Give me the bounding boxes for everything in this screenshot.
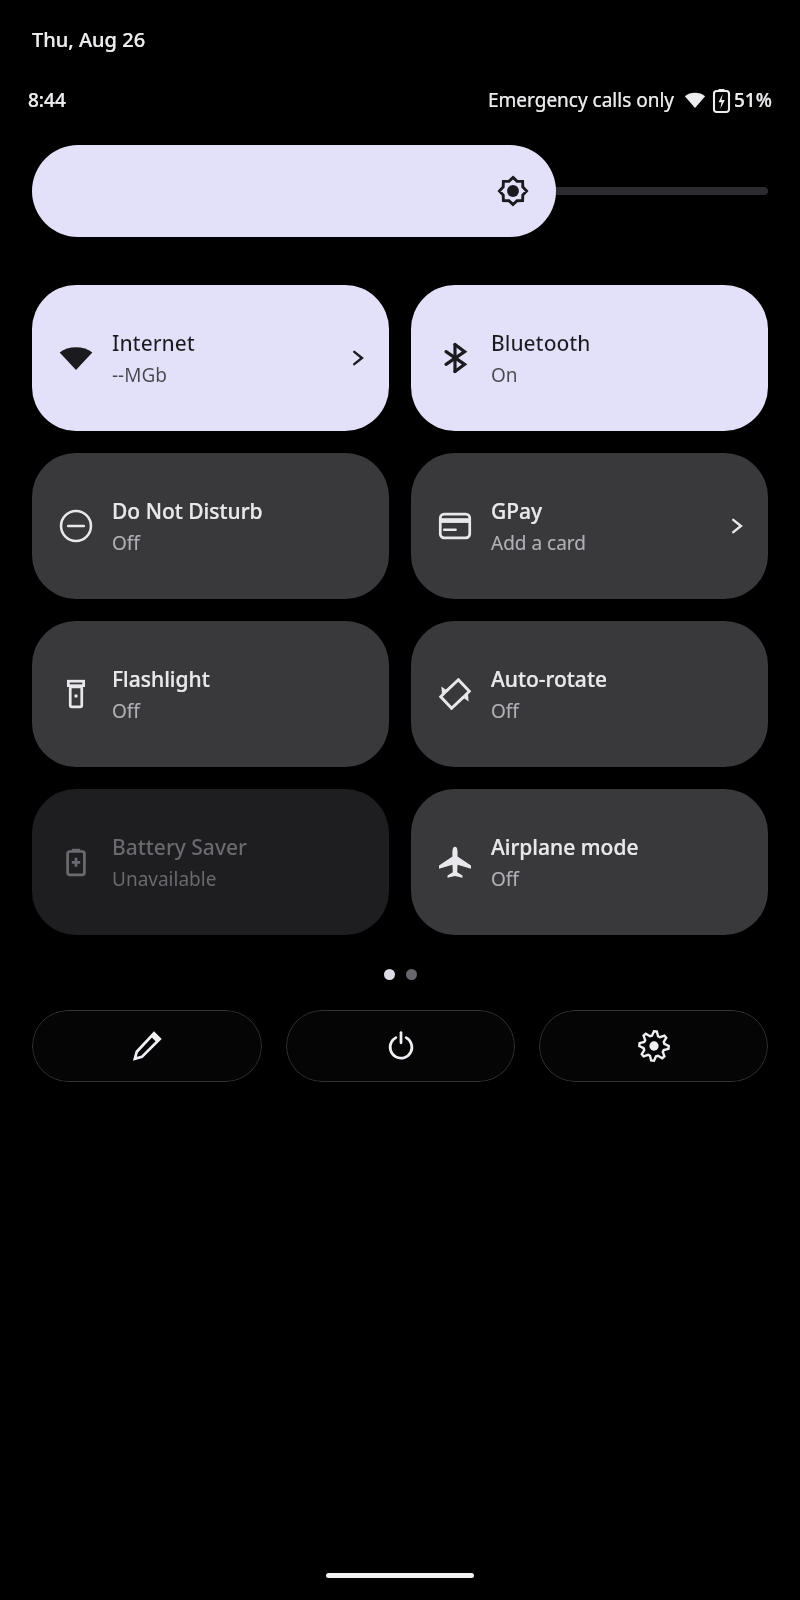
staticText: Do Not Disturb	[112, 497, 263, 526]
button[interactable]: Brightness	[32, 145, 768, 237]
button[interactable]: Airplane mode	[411, 789, 768, 935]
staticText: Unavailable	[112, 866, 217, 892]
button[interactable]: Battery Saver	[32, 789, 389, 935]
button[interactable]: Bluetooth	[411, 285, 768, 431]
button[interactable]: Flashlight	[32, 621, 389, 767]
staticText: 8:44	[28, 87, 66, 113]
staticText: Airplane mode	[491, 833, 639, 862]
staticText: Battery Saver	[112, 833, 247, 862]
button[interactable]: GPay	[411, 453, 768, 599]
staticText: --MGb	[112, 362, 167, 388]
staticText: Internet	[112, 329, 195, 358]
button[interactable]: Settings	[539, 1010, 768, 1082]
button[interactable]: Internet	[32, 285, 389, 431]
staticText: 51%	[734, 87, 772, 113]
button[interactable]: Do Not Disturb	[32, 453, 389, 599]
staticText: Emergency calls only	[488, 87, 675, 113]
button[interactable]: Auto-rotate	[411, 621, 768, 767]
staticText: Add a card	[491, 530, 586, 556]
staticText: GPay	[491, 497, 543, 526]
staticText: Off	[112, 530, 140, 556]
button[interactable]: Power	[286, 1010, 515, 1082]
staticText: On	[491, 362, 518, 388]
staticText: Off	[112, 698, 140, 724]
staticText: Off	[491, 698, 519, 724]
button[interactable]: Edit	[32, 1010, 262, 1082]
staticText: Bluetooth	[491, 329, 591, 358]
staticText: Auto-rotate	[491, 665, 607, 694]
staticText: Flashlight	[112, 665, 210, 694]
staticText: Off	[491, 866, 519, 892]
staticText: Thu, Aug 26	[32, 26, 146, 53]
